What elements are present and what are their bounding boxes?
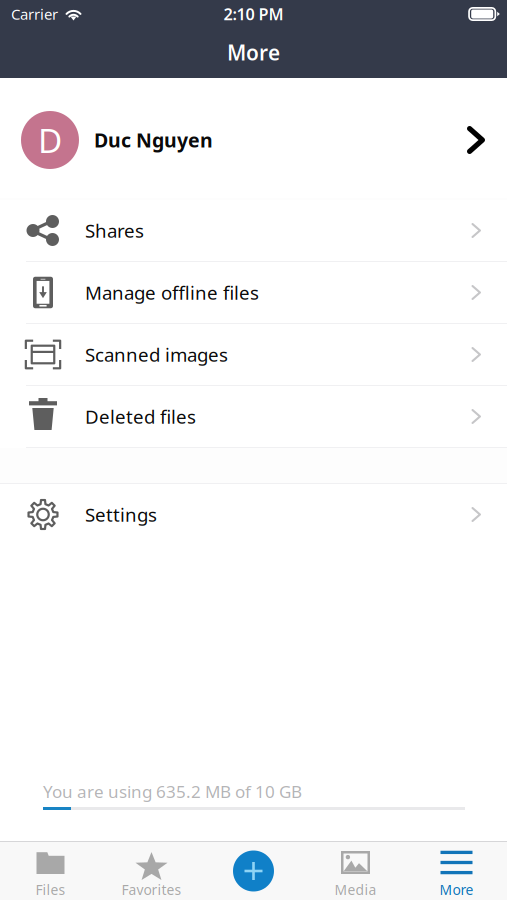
button[interactable]: More xyxy=(406,842,507,900)
staticText: Manage offline files xyxy=(85,280,259,305)
staticText: Favorites xyxy=(121,880,181,899)
staticText: Media xyxy=(334,880,376,899)
button[interactable]: Add xyxy=(202,842,305,900)
staticText: 2:10 PM xyxy=(223,3,283,25)
staticText: Scanned images xyxy=(85,342,228,367)
staticText: Shares xyxy=(85,218,144,243)
button[interactable]: Manage offline files xyxy=(0,262,507,323)
button[interactable]: Favorites xyxy=(101,842,202,900)
button[interactable]: Files xyxy=(0,842,101,900)
staticText: Duc Nguyen xyxy=(94,127,213,153)
button[interactable]: Shares xyxy=(0,200,507,261)
staticText: You are using 635.2 MB of 10 GB xyxy=(43,780,302,803)
button[interactable]: D xyxy=(0,78,507,198)
staticText: Carrier xyxy=(11,4,58,24)
staticText: Files xyxy=(35,880,65,899)
staticText: More xyxy=(227,38,280,67)
button[interactable]: Settings xyxy=(0,484,507,545)
staticText: Settings xyxy=(85,502,157,527)
staticText: More xyxy=(439,880,473,899)
button[interactable]: Deleted files xyxy=(0,386,507,447)
button[interactable]: Media xyxy=(305,842,406,900)
staticText: Deleted files xyxy=(85,404,196,429)
staticText: D xyxy=(38,117,62,163)
button[interactable]: Scanned images xyxy=(0,324,507,385)
